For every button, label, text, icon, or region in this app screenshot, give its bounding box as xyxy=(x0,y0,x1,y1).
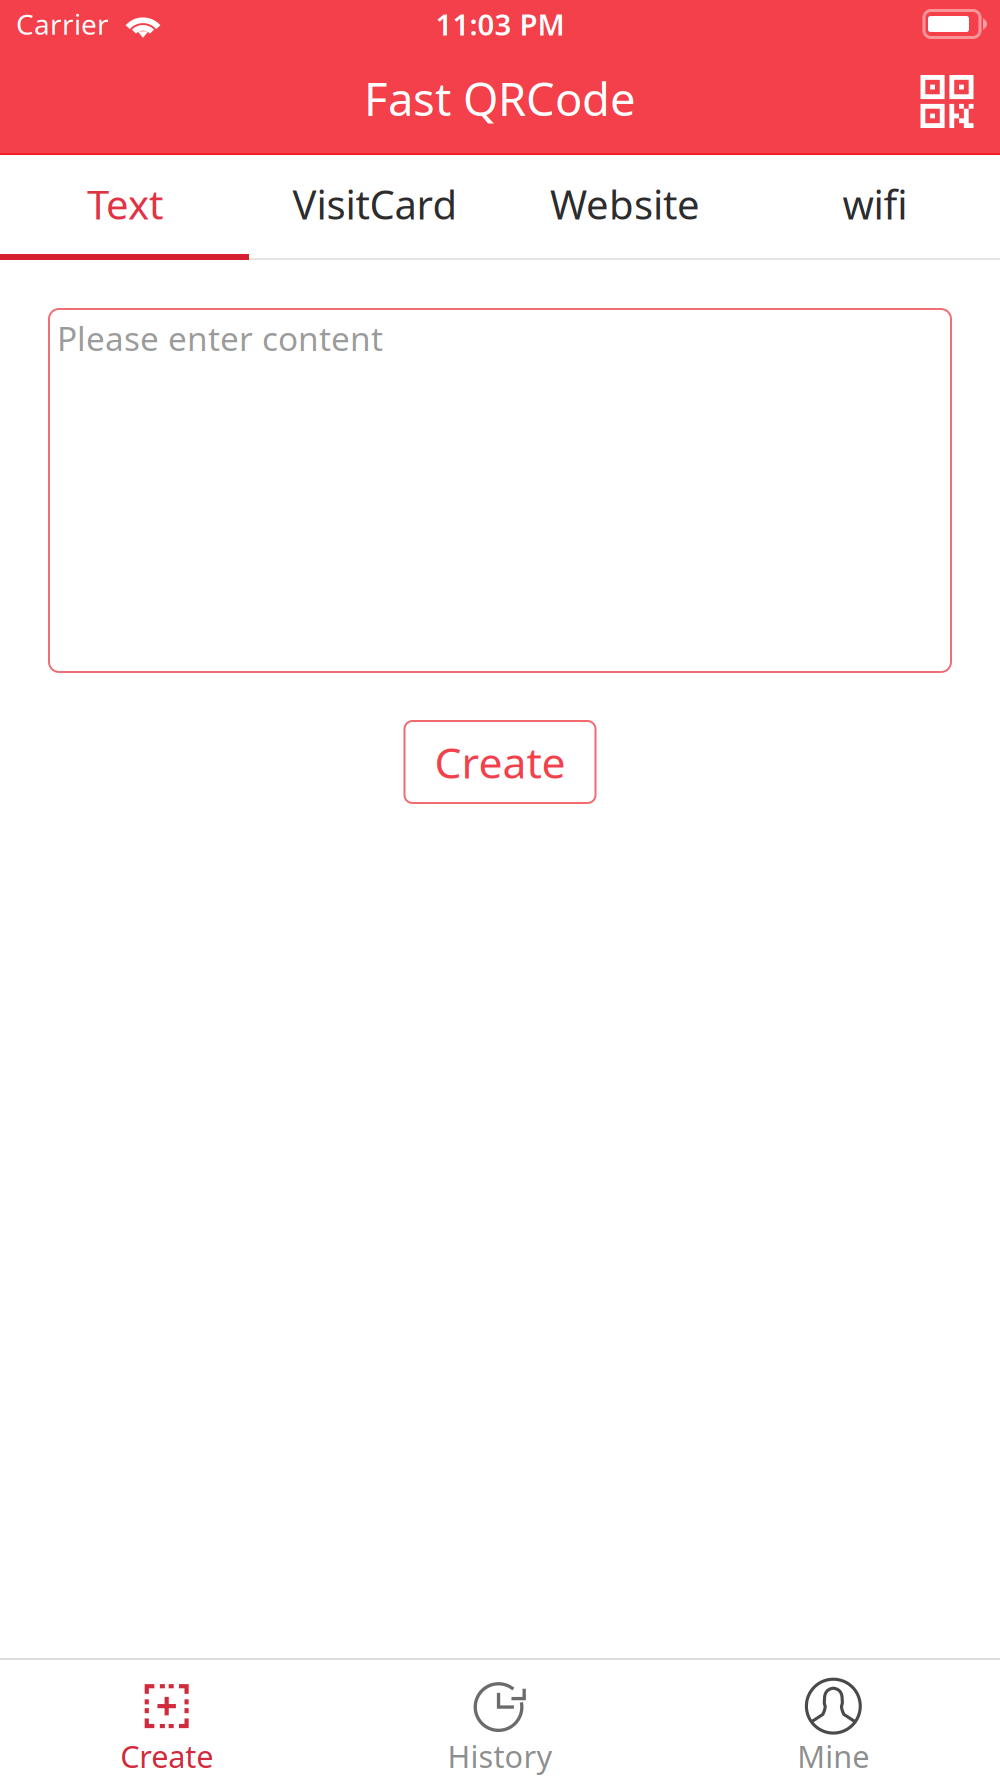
button[interactable]: Text xyxy=(0,155,250,260)
staticText: History xyxy=(447,1736,552,1776)
staticText: VisitCard xyxy=(292,177,457,230)
button[interactable]: Create xyxy=(0,1658,333,1778)
staticText: wifi xyxy=(842,177,907,230)
staticText: Text xyxy=(87,177,163,230)
staticText: Please enter content xyxy=(57,316,383,360)
staticText: Fast QRCode xyxy=(364,68,636,129)
staticText: Create xyxy=(434,734,565,790)
button[interactable]: Create xyxy=(404,721,595,803)
staticText: Carrier xyxy=(16,5,109,43)
button[interactable]: Mine xyxy=(667,1658,1000,1778)
staticText: Create xyxy=(120,1736,213,1776)
button[interactable]: Scan QR code xyxy=(907,48,987,155)
button[interactable]: History xyxy=(333,1658,667,1778)
staticText: 11:03 PM xyxy=(435,4,564,43)
button[interactable]: Website xyxy=(500,155,750,260)
button[interactable]: VisitCard xyxy=(250,155,500,260)
staticText: Website xyxy=(550,177,700,230)
staticText: Mine xyxy=(797,1736,869,1776)
button[interactable]: wifi xyxy=(750,155,1000,260)
